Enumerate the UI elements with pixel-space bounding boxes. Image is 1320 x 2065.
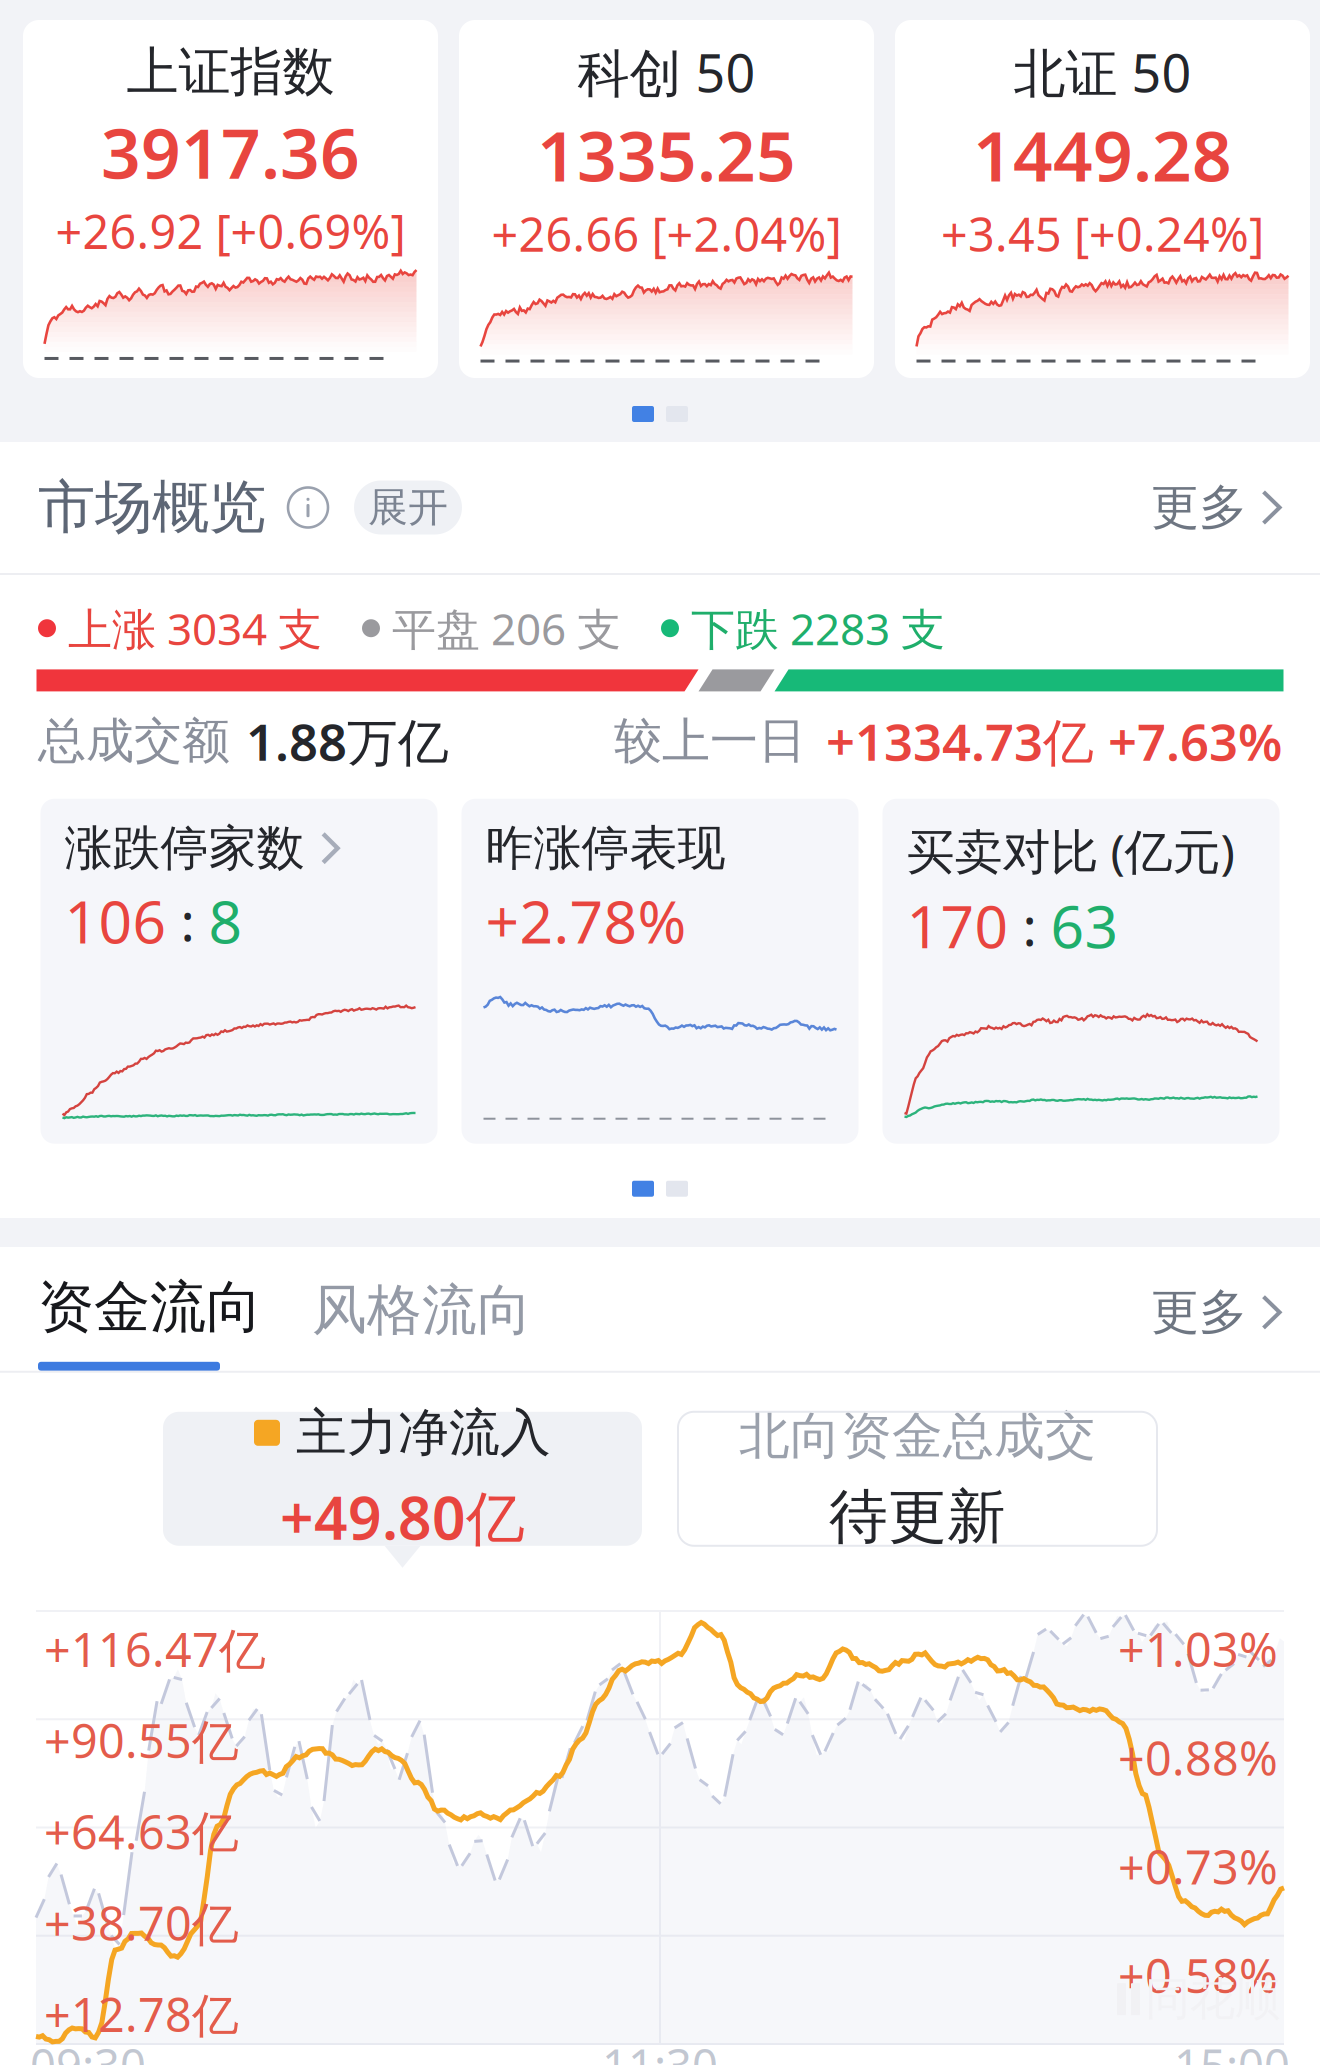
staticText: 106 bbox=[64, 882, 166, 960]
button[interactable]: 科创 50 bbox=[459, 20, 874, 378]
staticText: 科创 50 bbox=[577, 37, 755, 107]
staticText: +7.63% bbox=[1108, 707, 1282, 775]
button[interactable]: 主力净流入 bbox=[163, 1412, 642, 1568]
staticText: 展开 bbox=[368, 483, 448, 532]
staticText: 3917.36 bbox=[101, 106, 360, 198]
staticText: +116.47亿 bbox=[44, 1618, 266, 1680]
staticText: 1335.25 bbox=[537, 108, 796, 201]
staticText: +90.55亿 bbox=[44, 1709, 239, 1771]
button[interactable]: 涨跌停家数 bbox=[40, 799, 437, 1144]
staticText: 09:30 bbox=[30, 2035, 146, 2065]
button[interactable]: Page 1 bbox=[632, 1181, 654, 1197]
staticText: 下跌 2283 支 bbox=[691, 599, 945, 657]
staticText: +64.63亿 bbox=[44, 1800, 239, 1862]
staticText: +1334.73亿 bbox=[826, 707, 1094, 775]
staticText: +38.70亿 bbox=[44, 1892, 239, 1954]
staticText: 涨跌停家数 bbox=[64, 819, 304, 878]
staticText: 更多 bbox=[1151, 478, 1247, 537]
staticText: : bbox=[166, 885, 208, 956]
staticText: 北向资金总成交 bbox=[739, 1405, 1096, 1467]
button[interactable]: 北向资金总成交 bbox=[678, 1412, 1157, 1546]
button[interactable]: 买卖对比 (亿元) bbox=[882, 799, 1279, 1144]
staticText: 同花顺 bbox=[1145, 1971, 1280, 2027]
button[interactable]: 更多 bbox=[1151, 1283, 1282, 1371]
staticText: 63 bbox=[1050, 886, 1118, 964]
staticText: 较上一日 bbox=[614, 712, 806, 771]
staticText: +3.45 [+0.24%] bbox=[941, 203, 1264, 265]
staticText: 15:00 bbox=[1174, 2035, 1290, 2065]
staticText: 北证 50 bbox=[1013, 37, 1191, 107]
staticText: 风格流向 bbox=[312, 1277, 532, 1344]
staticText: 170 bbox=[906, 886, 1008, 964]
staticText: +0.88% bbox=[1118, 1727, 1278, 1789]
staticText: +2.78% bbox=[485, 882, 686, 960]
staticText: 上证指数 bbox=[126, 40, 334, 104]
staticText: 上涨 3034 支 bbox=[68, 599, 322, 657]
button[interactable]: 北证 50 bbox=[895, 20, 1310, 378]
staticText: 1.88万亿 bbox=[246, 707, 449, 775]
staticText: 买卖对比 (亿元) bbox=[906, 819, 1234, 882]
staticText: +49.80亿 bbox=[280, 1478, 525, 1556]
staticText: 主力净流入 bbox=[296, 1402, 551, 1464]
button[interactable]: 资金流向 bbox=[38, 1273, 262, 1371]
staticText: +1.03% bbox=[1118, 1618, 1278, 1680]
button[interactable]: Page 1 bbox=[632, 406, 654, 422]
staticText: +26.92 [+0.69%] bbox=[55, 200, 405, 262]
staticText: 更多 bbox=[1151, 1283, 1247, 1342]
staticText: 昨涨停表现 bbox=[485, 819, 725, 878]
button[interactable]: 上证指数 bbox=[23, 20, 438, 378]
button[interactable]: 市场概览 bbox=[0, 442, 1320, 573]
staticText: 市场概览 bbox=[38, 472, 266, 543]
button[interactable]: 昨涨停表现 bbox=[461, 799, 858, 1144]
staticText: 8 bbox=[208, 882, 242, 960]
staticText: 待更新 bbox=[829, 1481, 1006, 1553]
staticText: 平盘 206 支 bbox=[392, 599, 621, 657]
button[interactable]: 风格流向 bbox=[262, 1277, 532, 1371]
staticText: 11:30 bbox=[602, 2035, 718, 2065]
staticText: +12.78亿 bbox=[44, 1983, 239, 2045]
staticText: 资金流向 bbox=[38, 1273, 262, 1342]
staticText: 总成交额 bbox=[38, 712, 230, 771]
staticText: +26.66 [+2.04%] bbox=[491, 203, 841, 265]
staticText: : bbox=[1008, 890, 1050, 961]
staticText: +0.58% bbox=[1118, 1944, 1278, 2006]
staticText: +0.73% bbox=[1118, 1835, 1278, 1897]
staticText: 1449.28 bbox=[973, 108, 1232, 201]
